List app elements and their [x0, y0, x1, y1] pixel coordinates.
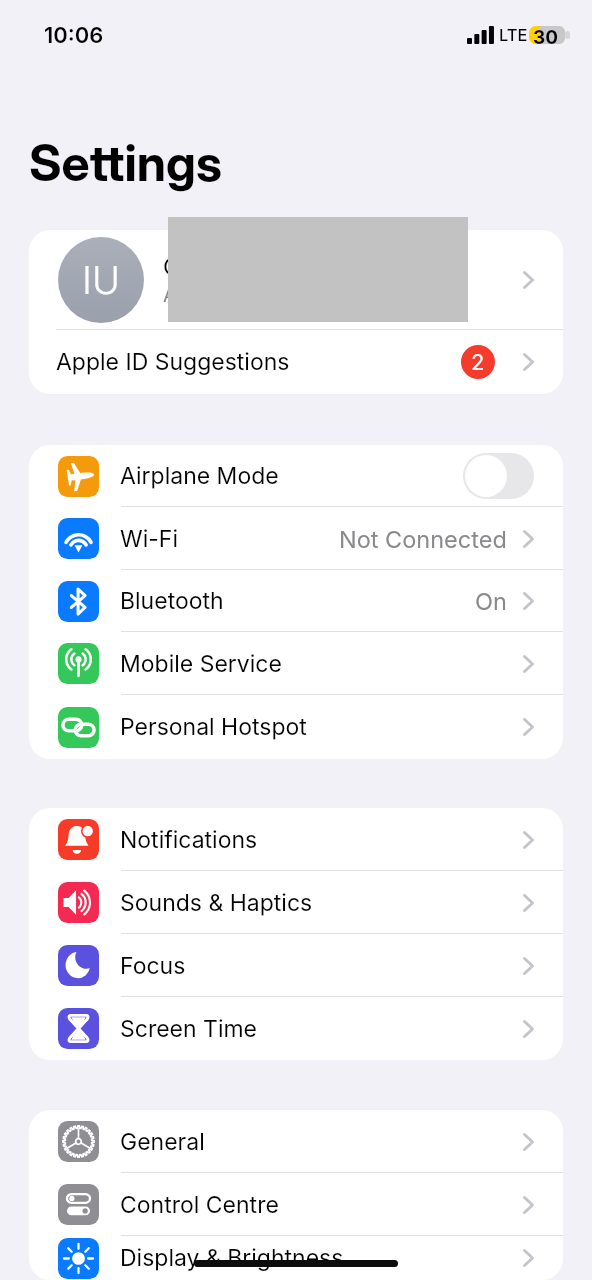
- staticText: LTE: [499, 25, 528, 45]
- staticText: Apple ID Suggestions: [56, 348, 290, 376]
- staticText: Bluetooth: [120, 587, 224, 615]
- staticText: Screen Time: [120, 1015, 258, 1043]
- button[interactable]: Wi-Fi: [29, 507, 563, 570]
- button[interactable]: Airplane Mode: [29, 445, 563, 507]
- staticText: Settings: [29, 133, 222, 193]
- staticText: IU: [82, 257, 120, 303]
- staticText: Airplane Mode: [120, 462, 279, 490]
- staticText: Focus: [120, 952, 186, 980]
- staticText: Notifications: [120, 826, 258, 854]
- staticText: Apple Account, iCloud and more: [163, 284, 454, 307]
- staticText: Wi-Fi: [120, 525, 178, 553]
- staticText: General: [120, 1128, 205, 1156]
- staticText: Carl: [163, 253, 208, 281]
- staticText: Control Centre: [120, 1191, 279, 1219]
- staticText: Not Connected: [339, 525, 507, 553]
- button[interactable]: IU: [29, 230, 563, 330]
- staticText: Sounds & Haptics: [120, 889, 313, 917]
- staticText: 2: [471, 349, 485, 376]
- button[interactable]: Screen Time: [29, 997, 563, 1060]
- button[interactable]: Bluetooth: [29, 570, 563, 632]
- staticText: 10:06: [44, 22, 104, 49]
- button[interactable]: Apple ID Suggestions: [29, 330, 563, 394]
- button[interactable]: Control Centre: [29, 1173, 563, 1236]
- staticText: Mobile Service: [120, 650, 282, 678]
- button[interactable]: Personal Hotspot: [29, 695, 563, 759]
- staticText: 30: [533, 26, 559, 44]
- staticText: On: [475, 587, 507, 615]
- button[interactable]: Sounds & Haptics: [29, 871, 563, 934]
- staticText: Personal Hotspot: [120, 713, 307, 741]
- button[interactable]: Focus: [29, 934, 563, 997]
- button[interactable]: Notifications: [29, 808, 563, 871]
- button[interactable]: Display & Brightness: [29, 1236, 563, 1280]
- button[interactable]: Mobile Service: [29, 632, 563, 695]
- button[interactable]: General: [29, 1110, 563, 1173]
- staticText: Display & Brightness: [120, 1244, 344, 1272]
